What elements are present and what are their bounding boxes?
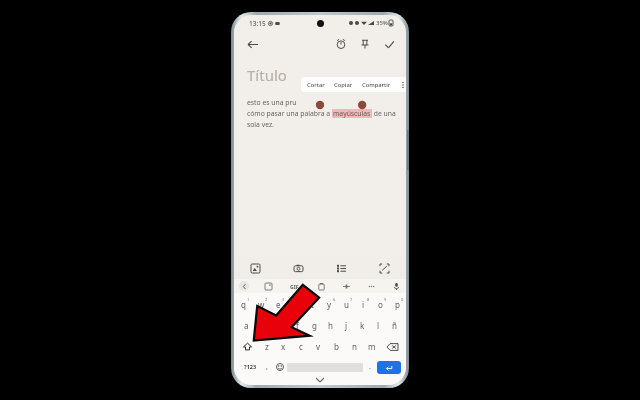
staticText: 2 [265, 297, 268, 302]
button[interactable]: Draw [363, 257, 406, 279]
button[interactable]: u [338, 297, 355, 312]
button[interactable]: Checklist [320, 257, 363, 279]
button[interactable]: Done [380, 35, 398, 53]
button[interactable]: f [289, 318, 306, 333]
button[interactable]: y [321, 297, 338, 312]
button[interactable]: Clipboard [316, 281, 326, 291]
button[interactable]: Cortar [306, 79, 326, 91]
staticText: 13:15 [249, 19, 266, 28]
button[interactable]: k [354, 318, 370, 333]
button[interactable]: Expand [239, 281, 249, 291]
button[interactable]: v [309, 339, 327, 354]
button[interactable]: Back [242, 34, 262, 54]
button[interactable]: q [234, 297, 252, 312]
button[interactable]: x [275, 339, 292, 354]
button[interactable]: s [255, 318, 272, 333]
button[interactable]: g [306, 318, 322, 333]
staticText: esto es una pru [247, 98, 297, 107]
staticText: GIF [290, 283, 299, 290]
staticText: Cortar [307, 81, 325, 89]
button[interactable]: Shift [236, 339, 258, 354]
button[interactable]: h [322, 318, 338, 333]
staticText: 5 [316, 297, 319, 302]
staticText: Título [247, 65, 287, 85]
staticText: h [328, 320, 333, 331]
staticText: 8 [367, 297, 370, 302]
button[interactable]: Camera [277, 257, 320, 279]
button[interactable]: Voice typing settings [341, 281, 351, 291]
staticText: v [316, 341, 321, 352]
staticText: mayúsculas [333, 109, 371, 118]
staticText: m [368, 341, 376, 352]
staticText: 7 [350, 297, 353, 302]
staticText: c [299, 341, 303, 352]
staticText: j [345, 320, 348, 331]
staticText: f [296, 320, 299, 331]
button[interactable]: z [258, 339, 275, 354]
staticText: Compartir [362, 81, 391, 89]
button[interactable]: Backspace [381, 339, 404, 354]
button[interactable]: e [270, 297, 287, 312]
staticText: , [266, 362, 268, 372]
button[interactable]: ?123 [239, 359, 261, 375]
button[interactable]: Emoji [273, 359, 287, 375]
staticText: 0 [401, 297, 404, 302]
button[interactable]: Reminder [332, 35, 350, 53]
button[interactable]: Stickers [263, 281, 273, 291]
staticText: ?123 [244, 363, 257, 371]
staticText: a [244, 320, 249, 331]
button[interactable]: j [338, 318, 354, 333]
staticText: q [241, 299, 246, 310]
staticText: cómo pasar una palabra a [247, 109, 332, 118]
button[interactable]: i [355, 297, 372, 312]
staticText: 1 [247, 297, 250, 302]
button[interactable]: n [345, 339, 363, 354]
staticText: o [378, 299, 383, 310]
button[interactable]: b [327, 339, 345, 354]
staticText: b [334, 341, 339, 352]
staticText: n [352, 341, 357, 352]
button[interactable]: GIF [288, 281, 301, 292]
button[interactable]: Enter [377, 361, 401, 374]
button[interactable]: p [389, 297, 406, 312]
staticText: t [311, 299, 314, 310]
button[interactable]: w [252, 297, 270, 312]
button[interactable]: More options [398, 80, 406, 90]
button[interactable]: a [238, 318, 255, 333]
staticText: i [362, 299, 365, 310]
button[interactable]: m [363, 339, 381, 354]
staticText: 3 [282, 297, 285, 302]
button[interactable]: ñ [386, 318, 402, 333]
button[interactable]: More [366, 281, 376, 291]
staticText: sola vez. [247, 120, 274, 129]
button[interactable]: r [287, 297, 304, 312]
button[interactable]: o [372, 297, 389, 312]
staticText: p [395, 299, 400, 310]
button[interactable]: Pin [356, 35, 374, 53]
staticText: x [281, 341, 286, 352]
staticText: e [276, 299, 281, 310]
staticText: 35% [376, 19, 388, 27]
button[interactable]: . [363, 359, 377, 375]
button[interactable]: c [292, 339, 309, 354]
button[interactable]: , [261, 359, 273, 375]
staticText: 9 [384, 297, 387, 302]
staticText: ñ [392, 320, 397, 331]
staticText: u [344, 299, 349, 310]
staticText: l [377, 320, 380, 331]
staticText: 6 [333, 297, 336, 302]
button[interactable]: Voice input [391, 281, 401, 291]
button[interactable]: Copiar [333, 79, 354, 91]
button[interactable]: Insert image [234, 257, 277, 279]
button[interactable]: t [304, 297, 321, 312]
button[interactable]: l [370, 318, 386, 333]
staticText: Copiar [334, 81, 353, 89]
button[interactable]: Compartir [361, 79, 392, 91]
staticText: k [360, 320, 365, 331]
